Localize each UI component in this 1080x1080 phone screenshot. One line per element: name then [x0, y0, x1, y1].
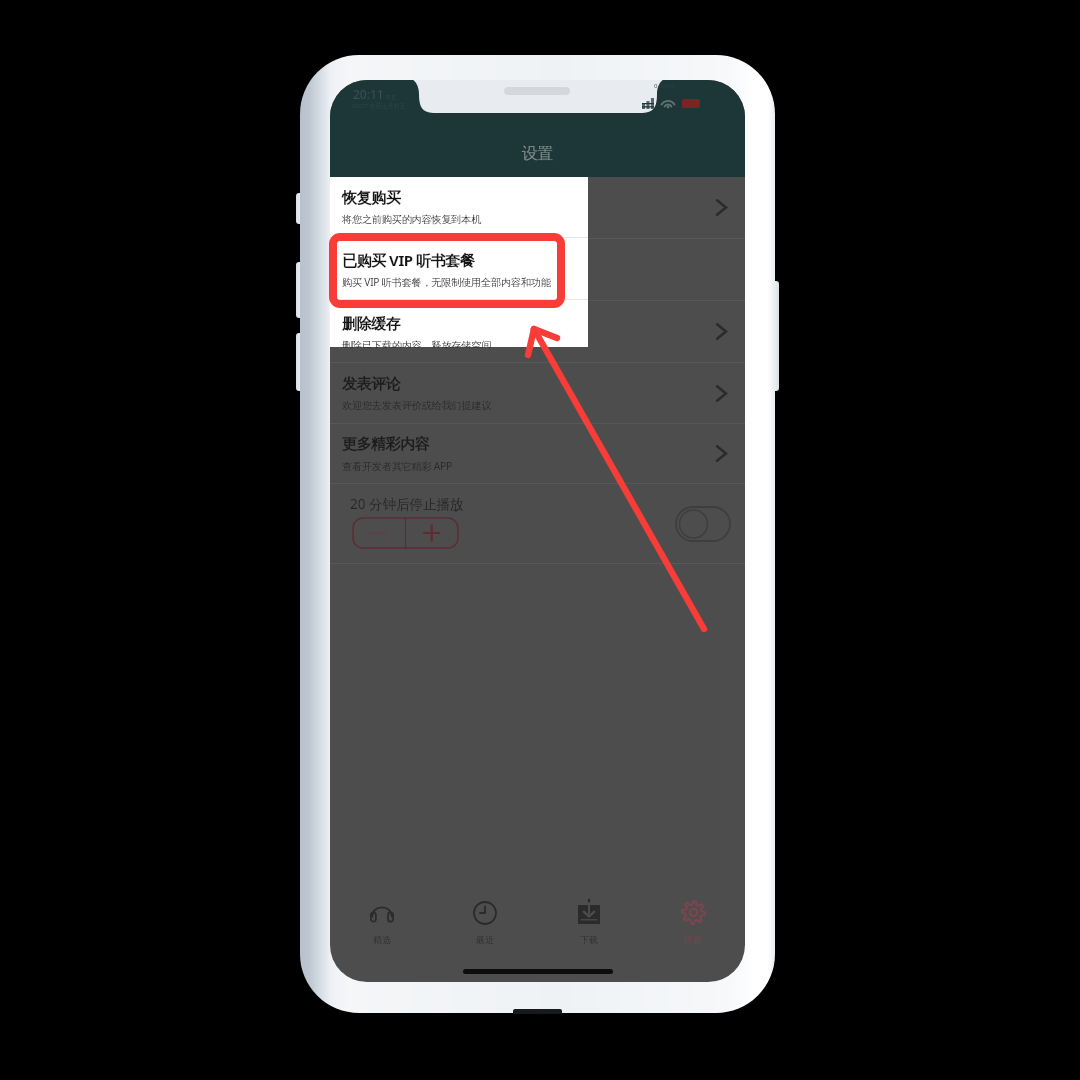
staticText: 恢复购买 [342, 189, 401, 208]
button[interactable]: 发表评论 [330, 363, 745, 423]
staticText: 购买 VIP 听书套餐，无限制使用全部内容和功能 [342, 275, 551, 289]
staticText: 精选 [373, 934, 391, 945]
button[interactable]: 恢复购买 [330, 177, 588, 238]
staticText: 恢复购买 [342, 189, 401, 208]
staticText: 下载 [580, 934, 598, 945]
staticText: 删除已下载的内容，释放存储空间 [342, 339, 492, 347]
staticText: 设置 [684, 934, 702, 945]
button[interactable]: 更多精彩内容 [330, 424, 745, 483]
staticText: 将您之前购买的内容恢复到本机 [342, 213, 482, 226]
staticText: 删除已下载的内容，释放存储空间 [342, 337, 492, 350]
button[interactable]: 下载 [537, 880, 641, 952]
staticText: 更多精彩内容 [342, 435, 430, 454]
staticText: 周五 [385, 94, 396, 101]
staticText: 已购买 VIP 听书套餐 [342, 250, 475, 270]
button[interactable]: 恢复购买 [330, 177, 745, 238]
button[interactable]: 设置 [641, 880, 745, 952]
staticText: 最近 [476, 934, 494, 945]
button[interactable]: 精选 [330, 880, 433, 952]
button[interactable] [352, 517, 459, 549]
button[interactable]: 已购买 VIP 听书套餐 [330, 238, 588, 300]
staticText: 查看开发者其它精彩 APP [342, 459, 452, 473]
staticText: 发表评论 [342, 375, 401, 394]
staticText: 08/27 农历七月初五 [352, 102, 406, 110]
staticText: 0.00K/s [654, 82, 675, 90]
staticText: 20:11 [353, 86, 384, 102]
staticText: 删除缓存 [342, 315, 401, 334]
staticText: 设置 [330, 144, 745, 164]
button[interactable]: 最近 [433, 880, 537, 952]
staticText: 已购买 VIP 听书套餐 [342, 250, 475, 270]
staticText: 20 分钟后停止播放 [350, 495, 464, 513]
staticText: 删除缓存 [342, 313, 401, 332]
button[interactable]: 删除缓存 [330, 302, 588, 347]
staticText: 购买 VIP 听书套餐，无限制使用全部内容和功能 [342, 275, 551, 289]
staticText: 将您之前购买的内容恢复到本机 [342, 213, 482, 226]
button[interactable]: Sleep timer toggle [675, 506, 731, 542]
button[interactable]: 删除缓存 [330, 301, 745, 362]
button[interactable]: 已购买 VIP 听书套餐 [330, 239, 745, 300]
staticText: 欢迎您去发表评价或给我们提建议 [342, 399, 492, 412]
